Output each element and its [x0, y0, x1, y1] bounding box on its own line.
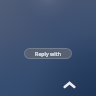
- button[interactable]: Reply with message: [24, 48, 72, 59]
- button[interactable]: Expand: [62, 80, 76, 90]
- staticText: Reply with message: [27, 50, 69, 57]
